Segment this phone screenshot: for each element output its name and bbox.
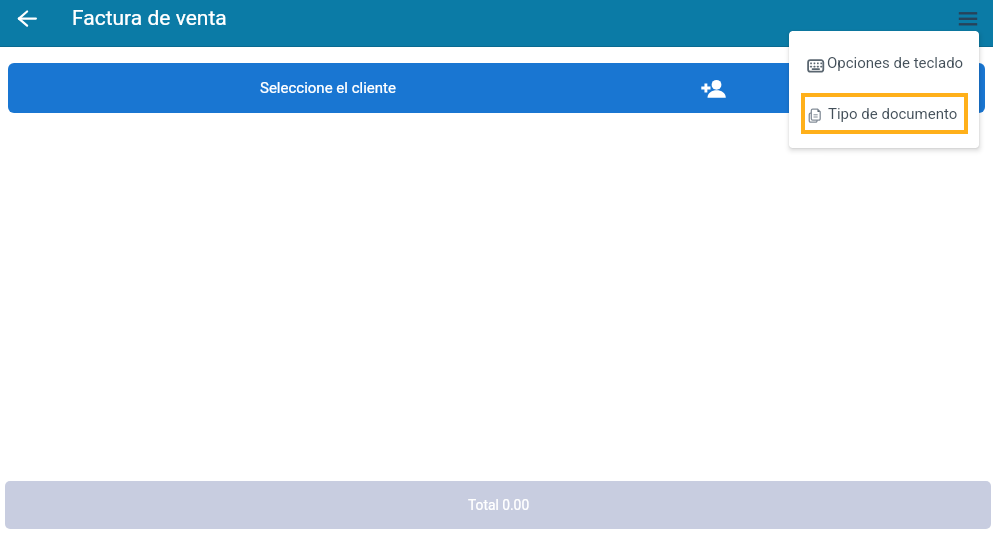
button[interactable]: Opciones de teclado	[789, 44, 979, 82]
staticText: Factura de venta	[72, 6, 227, 31]
button[interactable]: More options	[949, 0, 985, 36]
staticText: Opciones de teclado	[827, 54, 964, 72]
button[interactable]: Total 0.00	[5, 481, 991, 529]
staticText: Tipo de documento	[828, 105, 958, 123]
button[interactable]: Tipo de documento	[801, 93, 968, 134]
button[interactable]: Back	[9, 0, 45, 36]
staticText: Seleccione el cliente	[260, 79, 396, 97]
button[interactable]: Add client	[695, 70, 731, 106]
button[interactable]: Seleccione el cliente	[8, 63, 985, 113]
staticText: Total 0.00	[468, 497, 530, 513]
